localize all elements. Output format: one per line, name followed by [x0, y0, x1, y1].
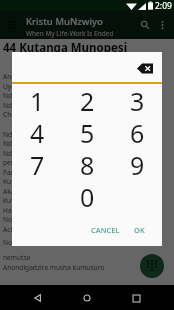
staticText: 2:09 — [155, 0, 172, 11]
button[interactable]: 5 — [62, 116, 112, 148]
staticText: Ndichagara naye nokusinga- — [3, 149, 92, 158]
staticText: 2 — [80, 84, 95, 116]
staticText: 6 — [130, 116, 145, 148]
button[interactable]: 0 — [62, 180, 112, 212]
staticText: Ndichifara munyika itsva. — [3, 101, 82, 110]
button[interactable]: Search — [135, 11, 155, 39]
button[interactable]: 2 — [62, 84, 112, 116]
button[interactable]: 1 — [12, 84, 62, 116]
button[interactable]: 8 — [62, 148, 112, 180]
staticText: 9 — [130, 148, 145, 180]
button[interactable]: Dialpad — [140, 254, 164, 278]
staticText: Ndozorora muruoko rwake, — [3, 91, 89, 100]
staticText: Chorus: — [3, 110, 27, 119]
staticText: When My Life-Work Is Ended — [26, 29, 114, 38]
staticText: 1 — [30, 84, 45, 116]
staticText: 3 — [130, 84, 145, 116]
staticText: 7 — [30, 148, 45, 180]
staticText: Nokuda kworudo rwake ne- — [3, 238, 89, 247]
staticText: nemutsa — [3, 253, 31, 262]
button[interactable]: 7 — [12, 148, 62, 180]
staticText: Ndichamurumbidza nokufara, — [3, 139, 96, 148]
staticText: 5 — [80, 116, 95, 148]
button[interactable]: CANCEL — [87, 222, 124, 238]
button[interactable]: More options — [151, 11, 173, 39]
button[interactable]: Home — [76, 287, 98, 309]
button[interactable]: 3 — [112, 84, 162, 116]
button[interactable]: 4 — [12, 116, 62, 148]
staticText: 44 Kutanga Munopesi — [3, 40, 128, 56]
staticText: 4 — [30, 116, 45, 148]
staticText: CANCEL — [91, 225, 120, 235]
button[interactable]: Delete — [136, 61, 154, 75]
staticText: OK — [134, 225, 145, 235]
staticText: Ndichaona chiso chake, — [3, 130, 76, 139]
button[interactable]: 6 — [112, 116, 162, 148]
button[interactable]: 9 — [112, 148, 162, 180]
staticText: 8 — [80, 148, 95, 180]
staticText: Anozoti basa rangu rapera, — [3, 72, 87, 81]
staticText: Achanditungamira kudenga, — [3, 225, 92, 234]
staticText: Uye nguva yangu yasvika, — [3, 82, 83, 91]
button[interactable]: Recent apps — [125, 287, 147, 309]
staticText: Kristu MuNzwiyo — [26, 15, 103, 28]
staticText: Handichazotya rufu zvakare, — [3, 206, 91, 215]
staticText: Akandifira padanda iro, — [3, 187, 76, 196]
staticText: Kuti ndiponeswe naye. — [3, 196, 74, 205]
staticText: pere, munzvimbo yakanaka. — [3, 158, 90, 167]
button[interactable]: OK — [130, 222, 149, 238]
staticText: Nokuti iye ari kwandiri; — [3, 215, 75, 224]
staticText: Panguva iyo ndichaziva — [3, 168, 76, 177]
staticText: 0 — [80, 180, 95, 212]
button[interactable]: Back — [27, 287, 49, 309]
staticText: Anondigadzira musha kumusoro — [3, 263, 105, 272]
staticText: Kuti rudo rwake rukuru, — [3, 177, 78, 186]
